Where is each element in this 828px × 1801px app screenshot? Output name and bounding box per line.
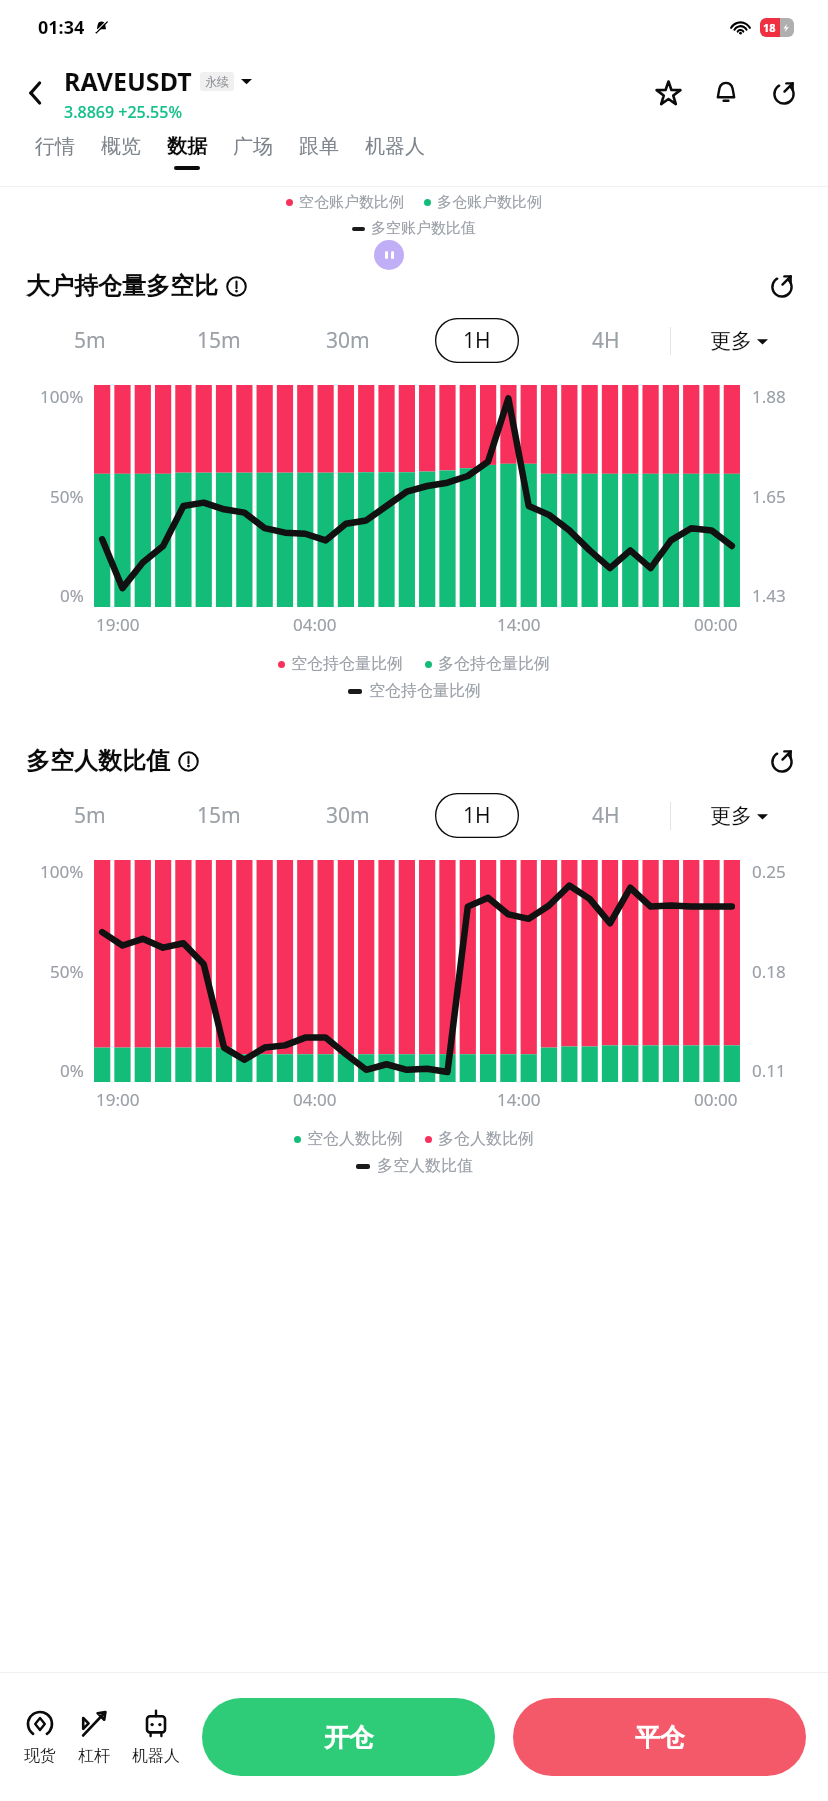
- staticText: 现货: [24, 1746, 56, 1766]
- button[interactable]: Back: [14, 71, 58, 115]
- staticText: 概览: [101, 134, 141, 159]
- button[interactable]: 4H: [541, 326, 670, 355]
- staticText: 多空人数比值: [377, 1156, 473, 1176]
- staticText: 30m: [326, 801, 370, 830]
- button[interactable]: Expand chart: [762, 266, 802, 306]
- button[interactable]: 跟单: [286, 134, 352, 166]
- staticText: 50%: [50, 960, 84, 983]
- staticText: 机器人: [132, 1746, 180, 1766]
- staticText: 18: [763, 20, 776, 35]
- staticText: 1.43: [752, 584, 786, 607]
- button[interactable]: 开仓: [202, 1698, 495, 1776]
- staticText: 04:00: [293, 1088, 337, 1111]
- staticText: 14:00: [497, 1088, 541, 1111]
- button[interactable]: 4H: [541, 801, 670, 830]
- staticText: 00:00: [694, 1088, 738, 1111]
- staticText: 15m: [197, 326, 241, 355]
- staticText: 广场: [233, 134, 273, 159]
- staticText: 更多: [710, 803, 752, 829]
- staticText: 行情: [35, 134, 75, 159]
- button[interactable]: 数据: [154, 134, 220, 170]
- staticText: 1.65: [752, 485, 786, 508]
- button[interactable]: 更多: [671, 803, 806, 829]
- staticText: 14:00: [497, 613, 541, 636]
- staticText: 开仓: [324, 1722, 374, 1753]
- staticText: 19:00: [96, 613, 140, 636]
- staticText: 0.11: [752, 1059, 786, 1082]
- staticText: 50%: [50, 485, 84, 508]
- staticText: 1H: [463, 326, 491, 355]
- button[interactable]: Share: [762, 71, 806, 115]
- staticText: 多仓账户数比例: [437, 193, 542, 212]
- staticText: 1.88: [752, 385, 786, 408]
- button[interactable]: 平仓: [513, 1698, 806, 1776]
- staticText: 多空账户数比值: [371, 219, 476, 238]
- staticText: 多仓持仓量比例: [438, 654, 550, 674]
- button[interactable]: 30m: [283, 326, 412, 355]
- button[interactable]: 1H: [435, 318, 519, 363]
- staticText: 多仓人数比例: [438, 1129, 534, 1149]
- staticText: 5m: [74, 801, 106, 830]
- staticText: 30m: [326, 326, 370, 355]
- staticText: 更多: [710, 328, 752, 354]
- staticText: 杠杆: [78, 1746, 110, 1766]
- staticText: 01:34: [38, 15, 85, 40]
- staticText: 平仓: [635, 1722, 685, 1753]
- staticText: 0%: [60, 1059, 84, 1082]
- button[interactable]: 概览: [88, 134, 154, 166]
- staticText: 100%: [40, 860, 84, 883]
- button[interactable]: 广场: [220, 134, 286, 166]
- button[interactable]: 杠杆: [76, 1709, 112, 1766]
- staticText: 4H: [592, 326, 620, 355]
- staticText: RAVEUSDT: [64, 64, 192, 98]
- button[interactable]: Notifications: [704, 71, 748, 115]
- staticText: 3.8869 +25.55%: [64, 101, 183, 123]
- staticText: 4H: [592, 801, 620, 830]
- staticText: 19:00: [96, 1088, 140, 1111]
- button[interactable]: 1H: [435, 793, 519, 838]
- staticText: 多空人数比值: [26, 746, 170, 776]
- button[interactable]: 5m: [26, 801, 154, 830]
- button[interactable]: 行情: [22, 134, 88, 166]
- staticText: 1H: [463, 801, 491, 830]
- staticText: 0.25: [752, 860, 786, 883]
- staticText: 100%: [40, 385, 84, 408]
- button[interactable]: 机器人: [130, 1709, 182, 1766]
- staticText: 空仓持仓量比例: [291, 654, 403, 674]
- button[interactable]: 30m: [283, 801, 412, 830]
- button[interactable]: Expand chart: [762, 741, 802, 781]
- button[interactable]: 15m: [154, 326, 283, 355]
- button[interactable]: Favorite: [646, 71, 690, 115]
- staticText: 大户持仓量多空比: [26, 271, 218, 301]
- button[interactable]: Assistant: [374, 240, 404, 270]
- button[interactable]: 更多: [671, 328, 806, 354]
- staticText: 跟单: [299, 134, 339, 159]
- staticText: 空仓持仓量比例: [369, 681, 481, 701]
- staticText: 00:00: [694, 613, 738, 636]
- button[interactable]: 5m: [26, 326, 154, 355]
- staticText: 永续: [205, 74, 229, 89]
- staticText: 5m: [74, 326, 106, 355]
- staticText: 15m: [197, 801, 241, 830]
- staticText: 机器人: [365, 134, 425, 159]
- staticText: 空仓人数比例: [307, 1129, 403, 1149]
- button[interactable]: 现货: [22, 1709, 58, 1766]
- staticText: 数据: [167, 134, 207, 159]
- staticText: 空仓账户数比例: [299, 193, 404, 212]
- staticText: 04:00: [293, 613, 337, 636]
- button[interactable]: 机器人: [352, 134, 438, 166]
- button[interactable]: 15m: [154, 801, 283, 830]
- staticText: 0.18: [752, 960, 786, 983]
- staticText: 0%: [60, 584, 84, 607]
